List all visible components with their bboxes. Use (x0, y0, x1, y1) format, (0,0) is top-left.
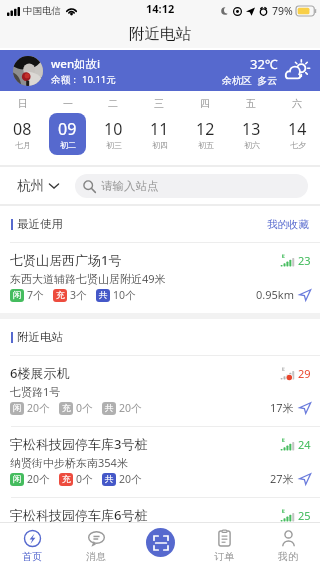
staticText: 五 (246, 97, 256, 110)
staticText: 初五 (198, 140, 214, 150)
staticText: 附近电站 (129, 24, 191, 44)
staticText: 纳贤街中步桥东南354米 (10, 455, 128, 470)
button[interactable]: 13 (233, 113, 270, 155)
staticText: 08 (13, 118, 32, 140)
staticText: 20个 (119, 472, 142, 486)
staticText: 6楼展示机 (10, 364, 70, 382)
button[interactable]: 消息 (64, 525, 128, 568)
staticText: 我的 (278, 550, 298, 563)
staticText: 闲 (13, 403, 22, 414)
staticText: 20个 (27, 472, 50, 486)
staticText: 闲 (13, 290, 22, 301)
staticText: 消息 (86, 550, 106, 563)
staticText: 14 (288, 118, 307, 140)
staticText: 24 (298, 437, 311, 452)
button[interactable]: 09 (49, 113, 86, 155)
staticText: 0个 (76, 472, 93, 486)
staticText: 25 (298, 508, 311, 523)
button[interactable] (13, 56, 43, 86)
staticText: 11 (150, 118, 169, 140)
staticText: 0个 (76, 401, 93, 415)
staticText: 初三 (106, 140, 122, 150)
staticText: 共 (99, 290, 108, 301)
staticText: wen如故i (51, 56, 101, 72)
staticText: 32℃ (250, 55, 278, 73)
staticText: 09 (58, 118, 77, 140)
staticText: 充 (56, 290, 65, 301)
button[interactable]: 我的 (256, 525, 320, 568)
staticText: 四 (200, 97, 210, 110)
staticText: 10个 (113, 288, 136, 302)
staticText: 订单 (214, 550, 234, 563)
staticText: 二 (108, 97, 118, 110)
button[interactable]: 订单 (192, 525, 256, 568)
staticText: 三 (154, 97, 164, 110)
staticText: 17米 (270, 400, 294, 415)
staticText: 最近使用 (17, 217, 63, 231)
button[interactable]: 宇松科技园停车库3号桩 (0, 427, 320, 498)
staticText: 宇松科技园停车库6号桩 (10, 506, 148, 524)
staticText: 充 (62, 403, 71, 414)
staticText: 七月 (15, 140, 31, 150)
button[interactable]: 08 (4, 113, 41, 155)
button[interactable]: 七贤山居西广场1号 (0, 243, 320, 313)
staticText: 10 (104, 118, 123, 140)
staticText: 一 (63, 97, 73, 110)
staticText: 13 (242, 118, 261, 140)
staticText: 7个 (27, 288, 44, 302)
staticText: 余杭区 多云 (222, 73, 278, 87)
button[interactable]: 扫一扫 (146, 528, 175, 557)
staticText: 充 (62, 474, 71, 485)
staticText: 首页 (22, 550, 42, 563)
button[interactable]: 首页 (0, 525, 64, 568)
button[interactable]: 杭州 (17, 177, 59, 194)
staticText: 29 (298, 366, 311, 381)
staticText: 3个 (70, 288, 87, 302)
staticText: 闲 (13, 474, 22, 485)
staticText: 七贤路1号 (10, 384, 61, 399)
staticText: 附近电站 (17, 330, 63, 344)
staticText: 东西大道辅路七贤山居附近49米 (10, 271, 166, 286)
button[interactable]: 10 (95, 113, 132, 155)
staticText: 0.95km (256, 287, 294, 302)
button[interactable]: 14 (279, 113, 316, 155)
staticText: 79% (272, 4, 293, 18)
staticText: 七夕 (290, 140, 306, 150)
staticText: 余额： 10.11元 (51, 73, 116, 86)
staticText: 日 (18, 97, 28, 110)
staticText: 14:12 (146, 1, 175, 16)
button[interactable]: 11 (141, 113, 178, 155)
staticText: 请输入站点 (101, 179, 159, 193)
staticText: 初四 (152, 140, 168, 150)
staticText: 共 (105, 403, 114, 414)
staticText: 12 (196, 118, 215, 140)
staticText: 我的收藏 (267, 218, 309, 231)
button[interactable]: 请输入站点 (75, 174, 308, 198)
staticText: 六 (292, 97, 302, 110)
button[interactable]: 宇松科技园停车库6号桩 (0, 498, 320, 535)
button[interactable]: 6楼展示机 (0, 356, 320, 427)
staticText: 七贤山居西广场1号 (10, 251, 122, 269)
staticText: 27米 (270, 471, 294, 486)
staticText: 20个 (119, 401, 142, 415)
staticText: 初二 (60, 140, 76, 150)
button[interactable]: 12 (187, 113, 224, 155)
staticText: 20个 (27, 401, 50, 415)
staticText: 宇松科技园停车库3号桩 (10, 435, 148, 453)
staticText: 初六 (244, 140, 260, 150)
staticText: 中国电信 (23, 5, 61, 17)
staticText: 共 (105, 474, 114, 485)
staticText: 23 (298, 253, 311, 268)
staticText: 杭州 (17, 177, 44, 194)
button[interactable]: 我的收藏 (267, 218, 309, 231)
